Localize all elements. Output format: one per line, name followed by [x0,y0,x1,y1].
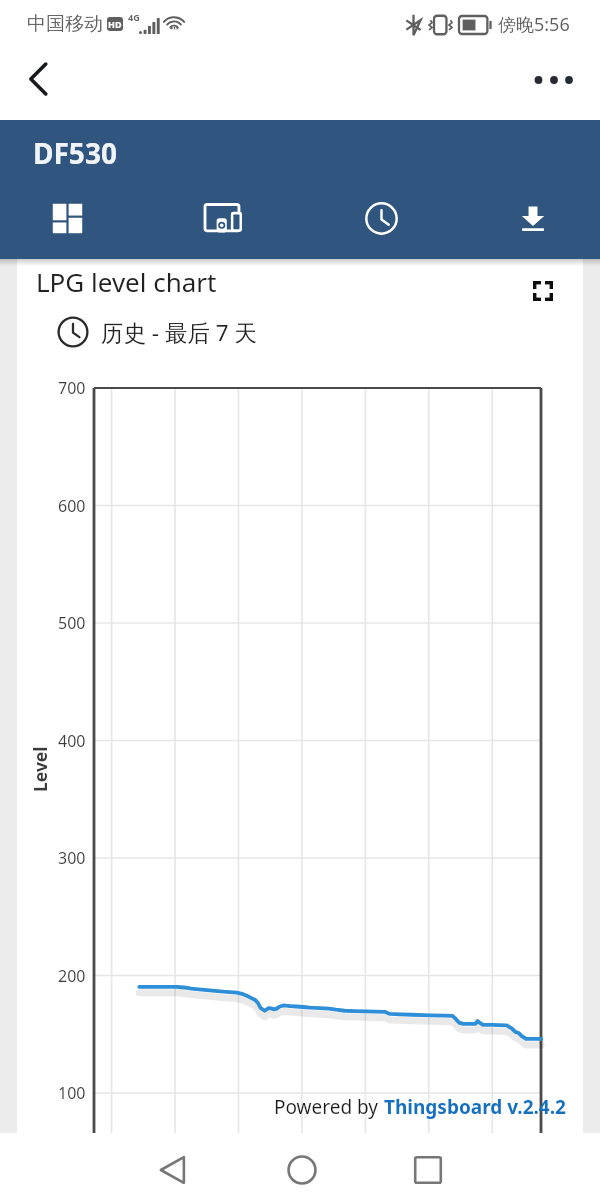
button[interactable]: Back [145,1142,201,1198]
staticText: Level [28,746,52,792]
staticText: 4G [128,11,140,23]
button[interactable]: Recents [400,1142,456,1198]
button[interactable]: Home [274,1142,330,1198]
staticText: 600 [58,495,86,517]
staticText: HD [108,18,122,30]
staticText: 中国移动 [27,12,103,36]
staticText: 傍晚5:56 [498,12,570,37]
staticText: 历史 - 最后 7 天 [101,317,258,348]
button[interactable]: History [343,182,419,254]
staticText: 100 [58,1082,86,1104]
staticText: LPG level chart [36,264,217,299]
staticText: 500 [58,612,86,634]
button[interactable]: Download [495,182,571,254]
button[interactable]: Thingsboard v.2.4.2 [384,1094,566,1120]
button[interactable]: Dashboard [29,182,105,254]
button[interactable]: More options [527,53,581,107]
staticText: 300 [58,847,86,869]
staticText: DF530 [33,134,117,172]
staticText: 200 [58,965,86,987]
staticText: Powered by [274,1094,384,1120]
button[interactable]: Devices [185,182,261,254]
button[interactable]: Fullscreen [523,271,563,311]
staticText: 700 [58,377,86,399]
staticText: 400 [58,730,86,752]
button[interactable]: Back [12,52,66,106]
